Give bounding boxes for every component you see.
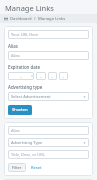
button[interactable]: Reset (29, 163, 44, 172)
staticText: Dashboard (10, 16, 32, 22)
staticText: -- (51, 74, 54, 79)
button[interactable]: Date segment (36, 72, 46, 80)
button[interactable]: Shorten (8, 105, 32, 115)
button[interactable]: Your URL Here (8, 30, 89, 39)
staticText: -- (20, 74, 23, 79)
staticText: Alias (11, 53, 20, 58)
button[interactable]: Select Advertisement (8, 92, 89, 101)
button[interactable]: Date segment (59, 72, 68, 80)
button[interactable]: Filter (8, 163, 26, 172)
staticText: Expiration date (8, 64, 40, 70)
button[interactable]: Advertising Type (8, 138, 89, 147)
staticText: Reset (31, 165, 42, 170)
staticText: Manage Links (38, 16, 66, 22)
staticText: Title, Desc, or URL (11, 152, 45, 157)
staticText: Select Advertisement (11, 94, 51, 99)
staticText: / (34, 16, 36, 22)
staticText: Alias (8, 43, 18, 49)
staticText: Manage Links (5, 3, 54, 13)
staticText: Filter (12, 165, 22, 170)
staticText: -- (40, 74, 43, 79)
staticText: -- (62, 74, 65, 79)
button[interactable]: Title, Desc, or URL (8, 150, 89, 159)
staticText: Alias (11, 128, 20, 133)
button[interactable]: Alias (8, 51, 89, 60)
staticText: Shorten (12, 107, 28, 113)
staticText: Your URL Here (11, 32, 39, 37)
button[interactable]: Date segment (48, 72, 57, 80)
button[interactable]: Alias (8, 126, 89, 135)
staticText: Advertising Type (11, 140, 43, 145)
button[interactable]: Date segment (8, 72, 34, 80)
staticText: Advertising type (8, 84, 43, 90)
button[interactable]: Dashboard (10, 16, 32, 22)
